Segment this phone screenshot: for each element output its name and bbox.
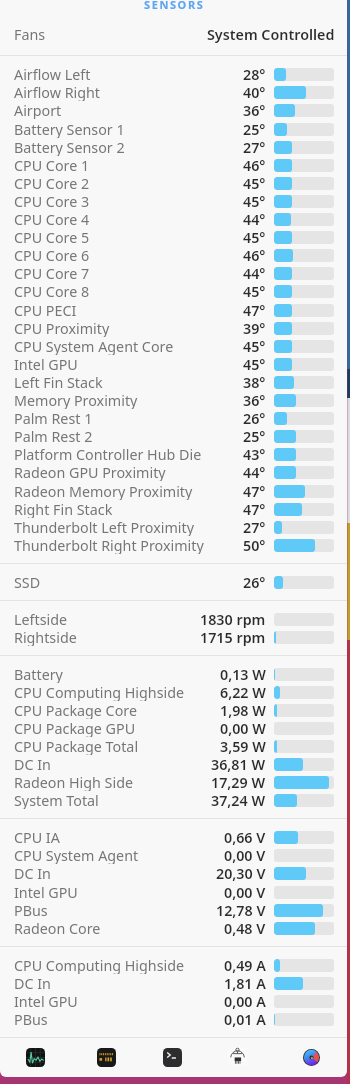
staticText: 43° xyxy=(243,445,266,463)
button[interactable]: CPU Core 1 xyxy=(0,156,347,174)
button[interactable]: Thunderbolt Left Proximity xyxy=(0,518,347,536)
button[interactable]: CPU Core 5 xyxy=(0,228,347,246)
button[interactable]: Battery Sensor 2 xyxy=(0,138,347,156)
staticText: PBus xyxy=(14,901,48,919)
button[interactable]: CPU Proximity xyxy=(0,319,347,337)
staticText: 45° xyxy=(243,228,266,246)
staticText: DC In xyxy=(14,864,51,882)
button[interactable]: CPU Package GPU xyxy=(0,719,347,737)
staticText: 1715 rpm xyxy=(200,628,266,646)
staticText: 1,81 A xyxy=(224,974,266,992)
button[interactable]: CPU Package Total xyxy=(0,737,347,755)
button[interactable]: CPU Core 7 xyxy=(0,264,347,282)
button[interactable]: Radeon High Side xyxy=(0,773,347,791)
staticText: Rightside xyxy=(14,628,77,646)
staticText: Right Fin Stack xyxy=(14,500,113,518)
button[interactable]: Left Fin Stack xyxy=(0,373,347,391)
button[interactable]: Thunderbolt Right Proximity xyxy=(0,536,347,554)
button[interactable]: Airport xyxy=(0,101,347,119)
button[interactable]: Intel GPU xyxy=(0,992,347,1010)
button[interactable]: Palm Rest 2 xyxy=(0,427,347,445)
staticText: 44° xyxy=(243,264,266,282)
button[interactable]: Rightside xyxy=(0,628,347,646)
staticText: Radeon High Side xyxy=(14,773,133,791)
staticText: Airport xyxy=(14,101,62,119)
staticText: CPU Core 7 xyxy=(14,264,90,282)
button[interactable]: Hardware Monitor xyxy=(228,1047,247,1066)
button[interactable]: DC In xyxy=(0,974,347,992)
staticText: 0,00 W xyxy=(220,719,266,737)
staticText: 45° xyxy=(243,282,266,300)
staticText: CPU Proximity xyxy=(14,319,110,337)
button[interactable]: CPU Core 2 xyxy=(0,174,347,192)
staticText: 46° xyxy=(243,156,266,174)
button[interactable]: Intel GPU xyxy=(0,883,347,901)
staticText: 44° xyxy=(243,463,266,481)
button[interactable]: PBus xyxy=(0,1010,347,1028)
button[interactable]: CPU IA xyxy=(0,828,347,846)
button[interactable]: CPU Core 4 xyxy=(0,210,347,228)
staticText: Thunderbolt Right Proximity xyxy=(14,536,204,554)
staticText: Platform Controller Hub Die xyxy=(14,445,202,463)
button[interactable]: Radeon Core xyxy=(0,919,347,937)
button[interactable]: CPU System Agent Core xyxy=(0,337,347,355)
staticText: Battery Sensor 1 xyxy=(14,120,125,138)
button[interactable]: Palm Rest 1 xyxy=(0,409,347,427)
staticText: CPU Core 6 xyxy=(14,246,90,264)
button[interactable]: Right Fin Stack xyxy=(0,500,347,518)
button[interactable]: CPU Core 8 xyxy=(0,282,347,300)
button[interactable]: Battery xyxy=(0,665,347,683)
staticText: SSD xyxy=(14,573,41,591)
staticText: Intel GPU xyxy=(14,883,78,901)
staticText: CPU System Agent Core xyxy=(14,337,174,355)
button[interactable]: Leftside xyxy=(0,610,347,628)
button[interactable]: Activity Monitor xyxy=(26,1048,45,1067)
staticText: 0,66 V xyxy=(224,828,266,846)
staticText: CPU Core 8 xyxy=(14,282,90,300)
staticText: 39° xyxy=(243,319,266,337)
staticText: Airflow Right xyxy=(14,83,101,101)
staticText: CPU Package Total xyxy=(14,737,139,755)
button[interactable]: CPU Computing Highside xyxy=(0,683,347,701)
staticText: Thunderbolt Left Proximity xyxy=(14,518,194,536)
staticText: 40° xyxy=(243,83,266,101)
staticText: 25° xyxy=(243,427,266,445)
staticText: 0,00 V xyxy=(224,846,266,864)
button[interactable]: Intel GPU xyxy=(0,355,347,373)
button[interactable]: iStat Menus xyxy=(97,1048,116,1067)
button[interactable]: Memory Proximity xyxy=(0,391,347,409)
button[interactable]: Battery Sensor 1 xyxy=(0,120,347,138)
staticText: 36° xyxy=(243,391,266,409)
button[interactable]: DC In xyxy=(0,755,347,773)
button[interactable]: Terminal xyxy=(163,1048,182,1067)
staticText: CPU System Agent xyxy=(14,846,139,864)
staticText: 12,78 V xyxy=(216,901,266,919)
button[interactable]: SSD xyxy=(0,573,347,591)
button[interactable]: CPU Package Core xyxy=(0,701,347,719)
button[interactable]: Airflow Left xyxy=(0,65,347,83)
staticText: 44° xyxy=(243,210,266,228)
staticText: Radeon Memory Proximity xyxy=(14,482,193,500)
staticText: 26° xyxy=(243,409,266,427)
button[interactable]: CPU Computing Highside xyxy=(0,956,347,974)
button[interactable]: Platform Controller Hub Die xyxy=(0,445,347,463)
staticText: DC In xyxy=(14,974,51,992)
staticText: 28° xyxy=(243,65,266,83)
button[interactable]: Fans xyxy=(0,25,347,43)
button[interactable]: Airflow Right xyxy=(0,83,347,101)
button[interactable]: Safari xyxy=(302,1048,321,1067)
button[interactable]: System Total xyxy=(0,791,347,809)
button[interactable]: CPU Core 3 xyxy=(0,192,347,210)
button[interactable]: CPU PECI xyxy=(0,301,347,319)
staticText: 37,24 W xyxy=(211,791,266,809)
button[interactable]: CPU System Agent xyxy=(0,846,347,864)
staticText: CPU PECI xyxy=(14,301,77,319)
button[interactable]: Radeon GPU Proximity xyxy=(0,463,347,481)
staticText: 0,13 W xyxy=(220,665,266,683)
button[interactable]: CPU Core 6 xyxy=(0,246,347,264)
staticText: 47° xyxy=(243,482,266,500)
button[interactable]: Radeon Memory Proximity xyxy=(0,482,347,500)
staticText: 20,30 V xyxy=(216,864,266,882)
button[interactable]: DC In xyxy=(0,864,347,882)
button[interactable]: PBus xyxy=(0,901,347,919)
